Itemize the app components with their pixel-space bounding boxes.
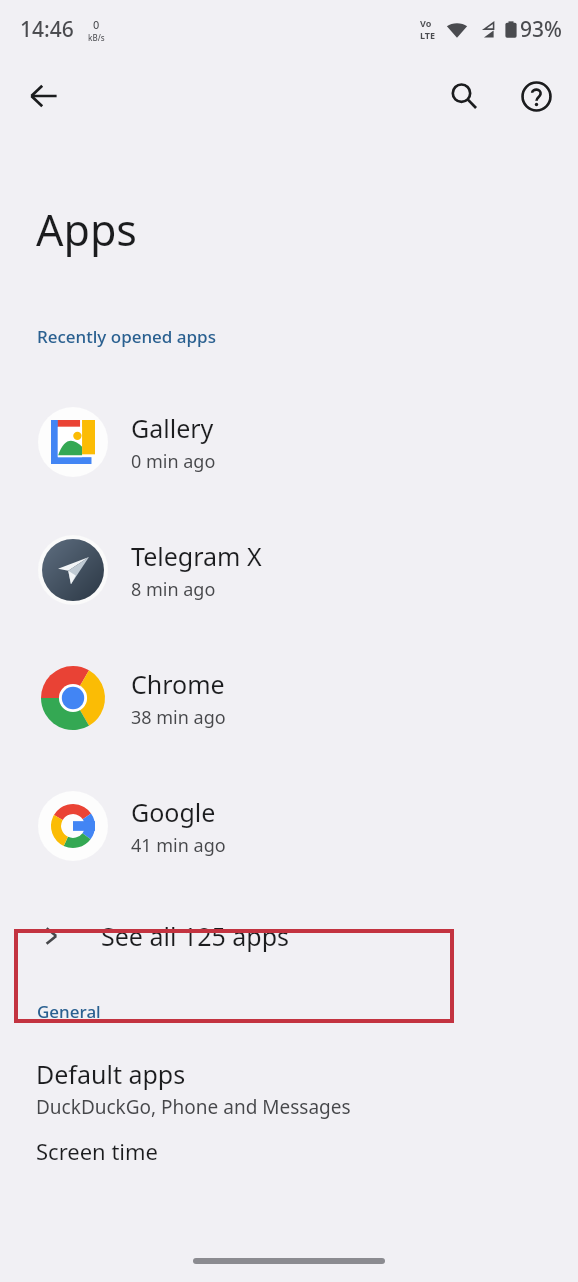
staticText: Screen time [36, 1136, 159, 1166]
button[interactable]: Back [16, 68, 72, 124]
staticText: 41 min ago [131, 833, 226, 858]
staticText: Gallery [131, 411, 214, 445]
staticText: 0 [93, 17, 100, 32]
staticText: DuckDuckGo, Phone and Messages [36, 1094, 351, 1120]
staticText: 14:46 [20, 15, 74, 44]
button[interactable]: Chrome [0, 634, 578, 762]
button[interactable]: Default apps [0, 1053, 578, 1124]
staticText: kB/s [88, 32, 105, 43]
staticText: Google [131, 795, 216, 829]
staticText: Vo [420, 17, 432, 29]
button[interactable]: Telegram X [0, 506, 578, 634]
staticText: Chrome [131, 667, 225, 701]
button[interactable]: See all 125 apps [0, 890, 578, 982]
button[interactable]: Help [508, 68, 564, 124]
button[interactable]: Search [436, 68, 492, 124]
staticText: Telegram X [131, 539, 262, 573]
staticText: 0 min ago [131, 449, 216, 474]
staticText: 93% [520, 15, 562, 44]
staticText: Apps [36, 200, 137, 259]
staticText: LTE [420, 29, 436, 41]
button[interactable]: Gallery [0, 378, 578, 506]
button[interactable]: Google [0, 762, 578, 890]
staticText: Default apps [36, 1057, 186, 1091]
staticText: 38 min ago [131, 705, 226, 730]
staticText: General [37, 1000, 101, 1023]
staticText: 8 min ago [131, 577, 216, 602]
staticText: See all 125 apps [101, 919, 290, 953]
staticText: Recently opened apps [37, 325, 216, 348]
